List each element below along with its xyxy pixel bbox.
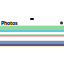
staticText: Photos <box>1 19 18 27</box>
